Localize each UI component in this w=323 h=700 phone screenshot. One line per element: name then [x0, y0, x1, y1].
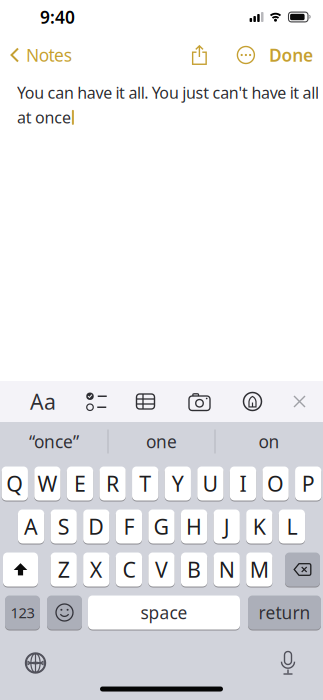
staticText: Z [58, 555, 70, 584]
staticText: Aa [30, 387, 56, 416]
button[interactable]: X [83, 547, 109, 587]
button[interactable]: Notes [0, 43, 72, 66]
staticText: one [146, 430, 177, 453]
button[interactable]: E [67, 461, 93, 501]
staticText: T [139, 469, 151, 498]
staticText: B [187, 555, 201, 584]
button[interactable] [207, 46, 255, 64]
button[interactable]: P [295, 461, 321, 501]
button[interactable] [56, 392, 107, 411]
staticText: You can have it all. You just can't have… [17, 82, 319, 103]
button[interactable] [285, 547, 320, 587]
button[interactable] [192, 45, 207, 65]
button[interactable] [262, 395, 305, 407]
button[interactable]: Q [2, 461, 28, 501]
button[interactable]: N [213, 547, 240, 587]
staticText: R [106, 469, 119, 498]
button[interactable]: K [246, 504, 272, 544]
button[interactable] [210, 392, 262, 411]
button[interactable]: Y [165, 461, 191, 501]
staticText: 123 [10, 603, 34, 622]
staticText: on [258, 430, 279, 453]
staticText: L [286, 512, 297, 541]
button[interactable]: V [148, 547, 175, 587]
button[interactable] [40, 590, 82, 630]
staticText: V [155, 555, 168, 584]
button[interactable]: on [215, 422, 322, 461]
staticText: Notes [26, 43, 72, 66]
button[interactable]: 123 [5, 590, 40, 630]
button[interactable]: I [230, 461, 256, 501]
staticText: A [24, 512, 38, 541]
staticText: C [122, 555, 135, 584]
staticText: M [250, 555, 269, 584]
staticText: U [202, 469, 218, 498]
button[interactable]: O [262, 461, 289, 501]
staticText: D [88, 512, 104, 541]
staticText: K [253, 512, 266, 541]
button[interactable]: “once” [0, 422, 107, 461]
button[interactable] [3, 547, 38, 587]
staticText: N [219, 555, 235, 584]
staticText: F [123, 512, 134, 541]
staticText: W [37, 469, 57, 498]
staticText: E [74, 469, 86, 498]
button[interactable]: Done [255, 43, 323, 66]
button[interactable]: G [148, 504, 175, 544]
button[interactable]: A [18, 504, 44, 544]
button[interactable]: H [181, 504, 207, 544]
staticText: I [239, 469, 246, 498]
button[interactable]: U [197, 461, 223, 501]
button[interactable]: B [181, 547, 207, 587]
staticText: return [258, 601, 310, 624]
staticText: Done [269, 43, 313, 66]
staticText: S [58, 512, 70, 541]
button[interactable] [281, 651, 323, 675]
button[interactable]: C [116, 547, 142, 587]
button[interactable]: W [34, 461, 60, 501]
staticText: “once” [29, 430, 79, 453]
staticText: X [90, 555, 103, 584]
staticText: at once [17, 107, 71, 128]
staticText: O [267, 469, 284, 498]
button[interactable]: R [99, 461, 126, 501]
staticText: J [224, 512, 230, 541]
button[interactable]: return [240, 590, 321, 630]
button[interactable] [107, 393, 155, 410]
button[interactable]: F [116, 504, 142, 544]
button[interactable]: Z [50, 547, 77, 587]
staticText: G [153, 512, 169, 541]
staticText: Y [172, 469, 184, 498]
staticText: 9:40 [40, 5, 75, 28]
staticText: Q [6, 469, 23, 498]
staticText: H [186, 512, 202, 541]
button[interactable]: J [213, 504, 240, 544]
staticText: space [140, 601, 187, 624]
button[interactable] [155, 392, 210, 410]
staticText: P [302, 469, 315, 498]
button[interactable]: M [246, 547, 272, 587]
button[interactable]: Aa [0, 387, 56, 416]
button[interactable]: space [82, 590, 240, 630]
button[interactable]: L [279, 504, 305, 544]
button[interactable] [0, 652, 46, 673]
button[interactable]: T [132, 461, 158, 501]
button[interactable]: S [50, 504, 77, 544]
button[interactable]: one [108, 422, 214, 461]
button[interactable]: D [83, 504, 109, 544]
